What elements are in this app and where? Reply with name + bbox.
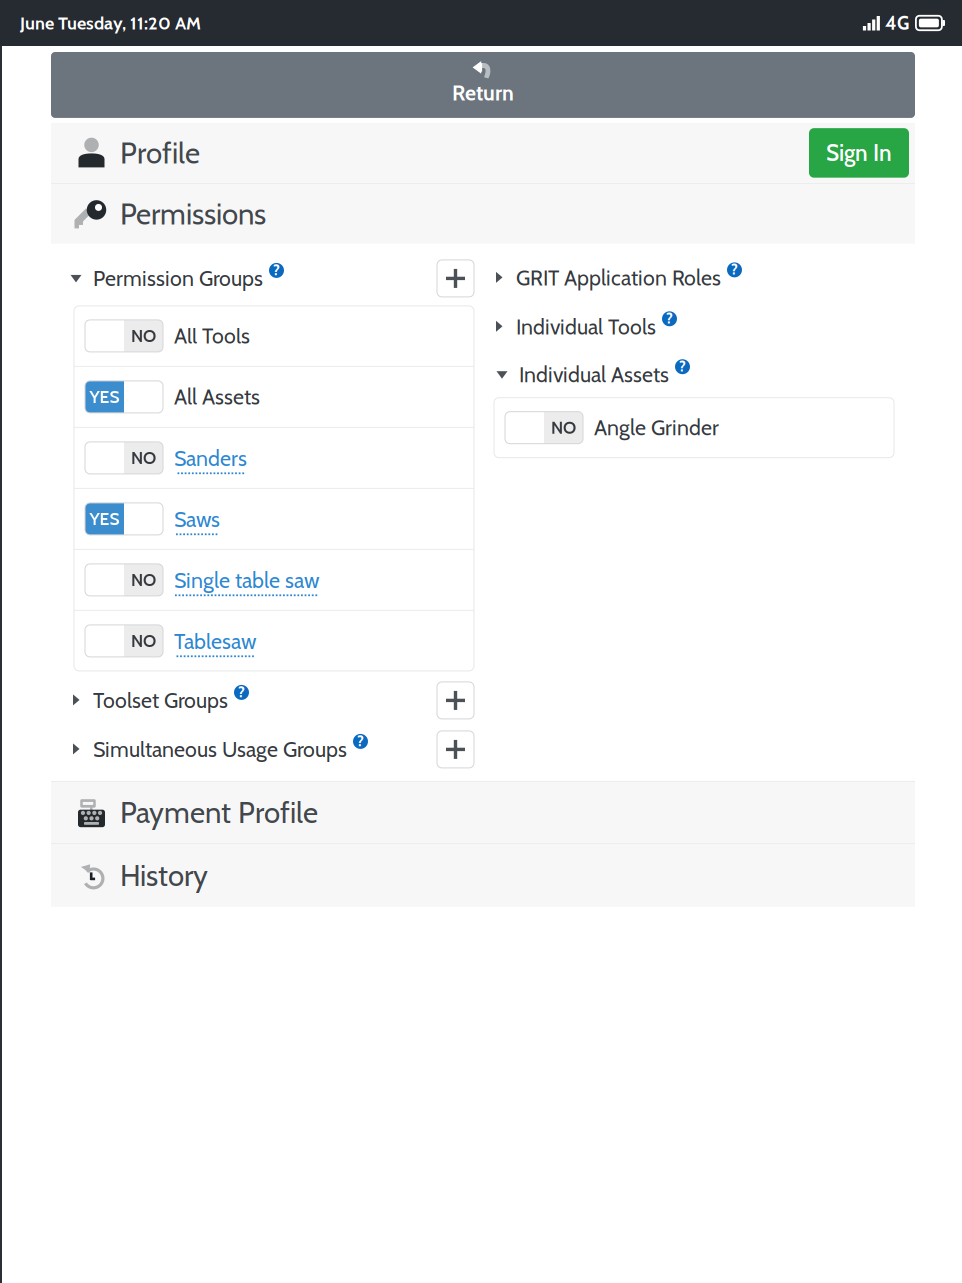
staticText: NO <box>131 447 156 468</box>
staticText: Return <box>452 80 514 106</box>
staticText: NO <box>551 417 576 438</box>
staticText: YES <box>89 508 119 529</box>
staticText: Tablesaw <box>174 628 256 654</box>
button[interactable]: NO <box>74 611 474 671</box>
staticText: Permissions <box>120 196 266 232</box>
button[interactable]: YES <box>74 367 474 427</box>
staticText: Angle Grinder <box>594 415 719 441</box>
staticText: All Assets <box>174 384 260 410</box>
button[interactable]: Individual Assets <box>496 357 690 393</box>
staticText: 4G <box>885 12 909 34</box>
button[interactable]: Add <box>437 260 474 297</box>
button[interactable]: NO <box>74 550 474 610</box>
staticText: Saws <box>174 506 220 532</box>
staticText: Toolset Groups <box>93 687 228 713</box>
staticText: June Tuesday, 11:20 AM <box>20 12 201 34</box>
button[interactable]: Toolset Groups <box>70 682 249 718</box>
staticText: All Tools <box>174 323 250 349</box>
staticText: Permission Groups <box>93 265 263 291</box>
button[interactable]: Add <box>437 731 474 768</box>
staticText: ? <box>238 683 245 701</box>
staticText: GRIT Application Roles <box>516 265 721 291</box>
button[interactable]: Add <box>437 682 474 719</box>
staticText: Individual Tools <box>516 314 656 340</box>
staticText: ? <box>357 732 364 750</box>
staticText: Sanders <box>174 445 247 471</box>
button[interactable]: Permission Groups <box>70 260 284 296</box>
button[interactable]: Permissions <box>51 184 915 244</box>
staticText: ? <box>679 357 686 375</box>
button[interactable]: GRIT Application Roles <box>493 260 742 296</box>
button[interactable]: YES <box>74 489 474 549</box>
staticText: ? <box>666 309 673 327</box>
button[interactable]: NO <box>74 306 474 366</box>
staticText: Single table saw <box>174 567 319 593</box>
staticText: NO <box>131 569 156 590</box>
staticText: History <box>120 858 208 893</box>
button[interactable]: NO <box>494 398 894 458</box>
staticText: Payment Profile <box>120 795 318 830</box>
staticText: YES <box>89 386 119 407</box>
button[interactable]: History <box>51 844 915 907</box>
button[interactable]: NO <box>74 428 474 488</box>
staticText: Sign In <box>826 139 892 167</box>
staticText: Individual Assets <box>519 362 669 388</box>
button[interactable]: Profile <box>51 123 915 183</box>
button[interactable]: Payment Profile <box>51 782 915 843</box>
staticText: NO <box>131 630 156 651</box>
staticText: Simultaneous Usage Groups <box>93 736 347 762</box>
button[interactable]: Simultaneous Usage Groups <box>70 731 368 767</box>
staticText: ? <box>731 260 738 278</box>
staticText: ? <box>273 261 280 279</box>
button[interactable]: Individual Tools <box>493 309 677 345</box>
staticText: NO <box>131 325 156 346</box>
button[interactable]: Return <box>51 52 915 118</box>
staticText: Profile <box>120 135 200 171</box>
